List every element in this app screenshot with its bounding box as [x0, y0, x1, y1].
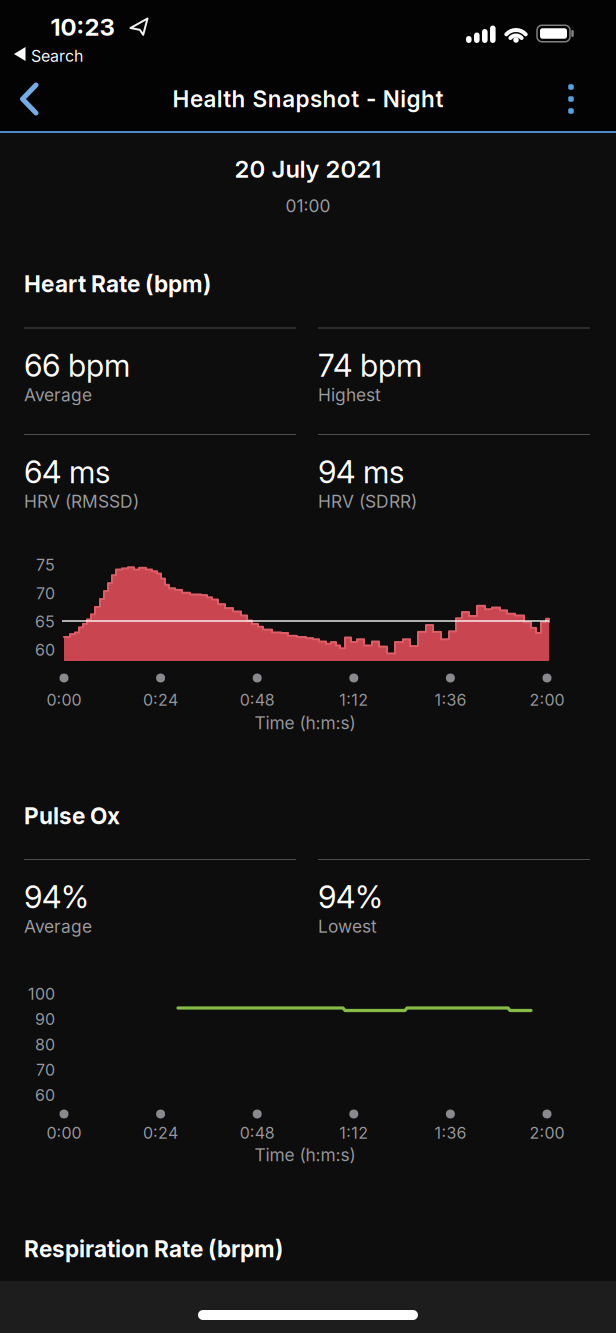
staticText: 1:12: [339, 1124, 368, 1142]
staticText: 2:00: [529, 1124, 564, 1142]
staticText: 75: [36, 556, 55, 574]
button[interactable]: Back to Search: [14, 42, 94, 70]
staticText: 2:00: [529, 691, 564, 709]
staticText: 66 bpm: [24, 347, 130, 384]
staticText: Search: [31, 47, 83, 65]
staticText: Time (h:m:s): [254, 1145, 355, 1165]
staticText: 0:00: [46, 691, 81, 709]
staticText: Health Snapshot - Night: [173, 86, 443, 112]
staticText: 1:12: [339, 691, 368, 709]
staticText: 1:36: [434, 1124, 466, 1142]
staticText: Pulse Ox: [24, 803, 120, 829]
staticText: 0:48: [240, 691, 275, 709]
staticText: 60: [35, 641, 55, 659]
staticText: 70: [36, 1060, 55, 1079]
staticText: Respiration Rate (brpm): [24, 1236, 283, 1262]
staticText: 65: [35, 612, 55, 631]
staticText: HRV (RMSSD): [24, 491, 139, 512]
staticText: Lowest: [318, 916, 377, 937]
staticText: Average: [24, 385, 92, 405]
staticText: 74 bpm: [318, 347, 422, 384]
staticText: 64 ms: [24, 454, 110, 490]
button[interactable]: Back: [7, 73, 51, 125]
staticText: 1:36: [434, 691, 466, 709]
staticText: 0:24: [143, 1124, 178, 1142]
staticText: 20 July 2021: [234, 155, 381, 183]
staticText: Heart Rate (bpm): [24, 271, 211, 297]
staticText: Time (h:m:s): [254, 713, 355, 733]
staticText: Average: [24, 916, 92, 937]
staticText: 10:23: [50, 13, 114, 41]
staticText: 94 ms: [318, 454, 404, 490]
staticText: 100: [28, 985, 55, 1003]
staticText: 01:00: [285, 196, 330, 216]
staticText: 0:24: [143, 691, 178, 709]
staticText: 80: [35, 1035, 55, 1054]
staticText: Highest: [318, 385, 381, 405]
button[interactable]: More options: [549, 73, 593, 125]
staticText: 94%: [318, 879, 383, 915]
staticText: 94%: [24, 879, 89, 915]
staticText: 0:00: [46, 1124, 81, 1142]
staticText: 0:48: [240, 1124, 275, 1142]
staticText: HRV (SDRR): [318, 491, 417, 512]
staticText: 70: [36, 584, 55, 603]
staticText: 60: [35, 1086, 55, 1105]
staticText: 90: [35, 1010, 55, 1029]
